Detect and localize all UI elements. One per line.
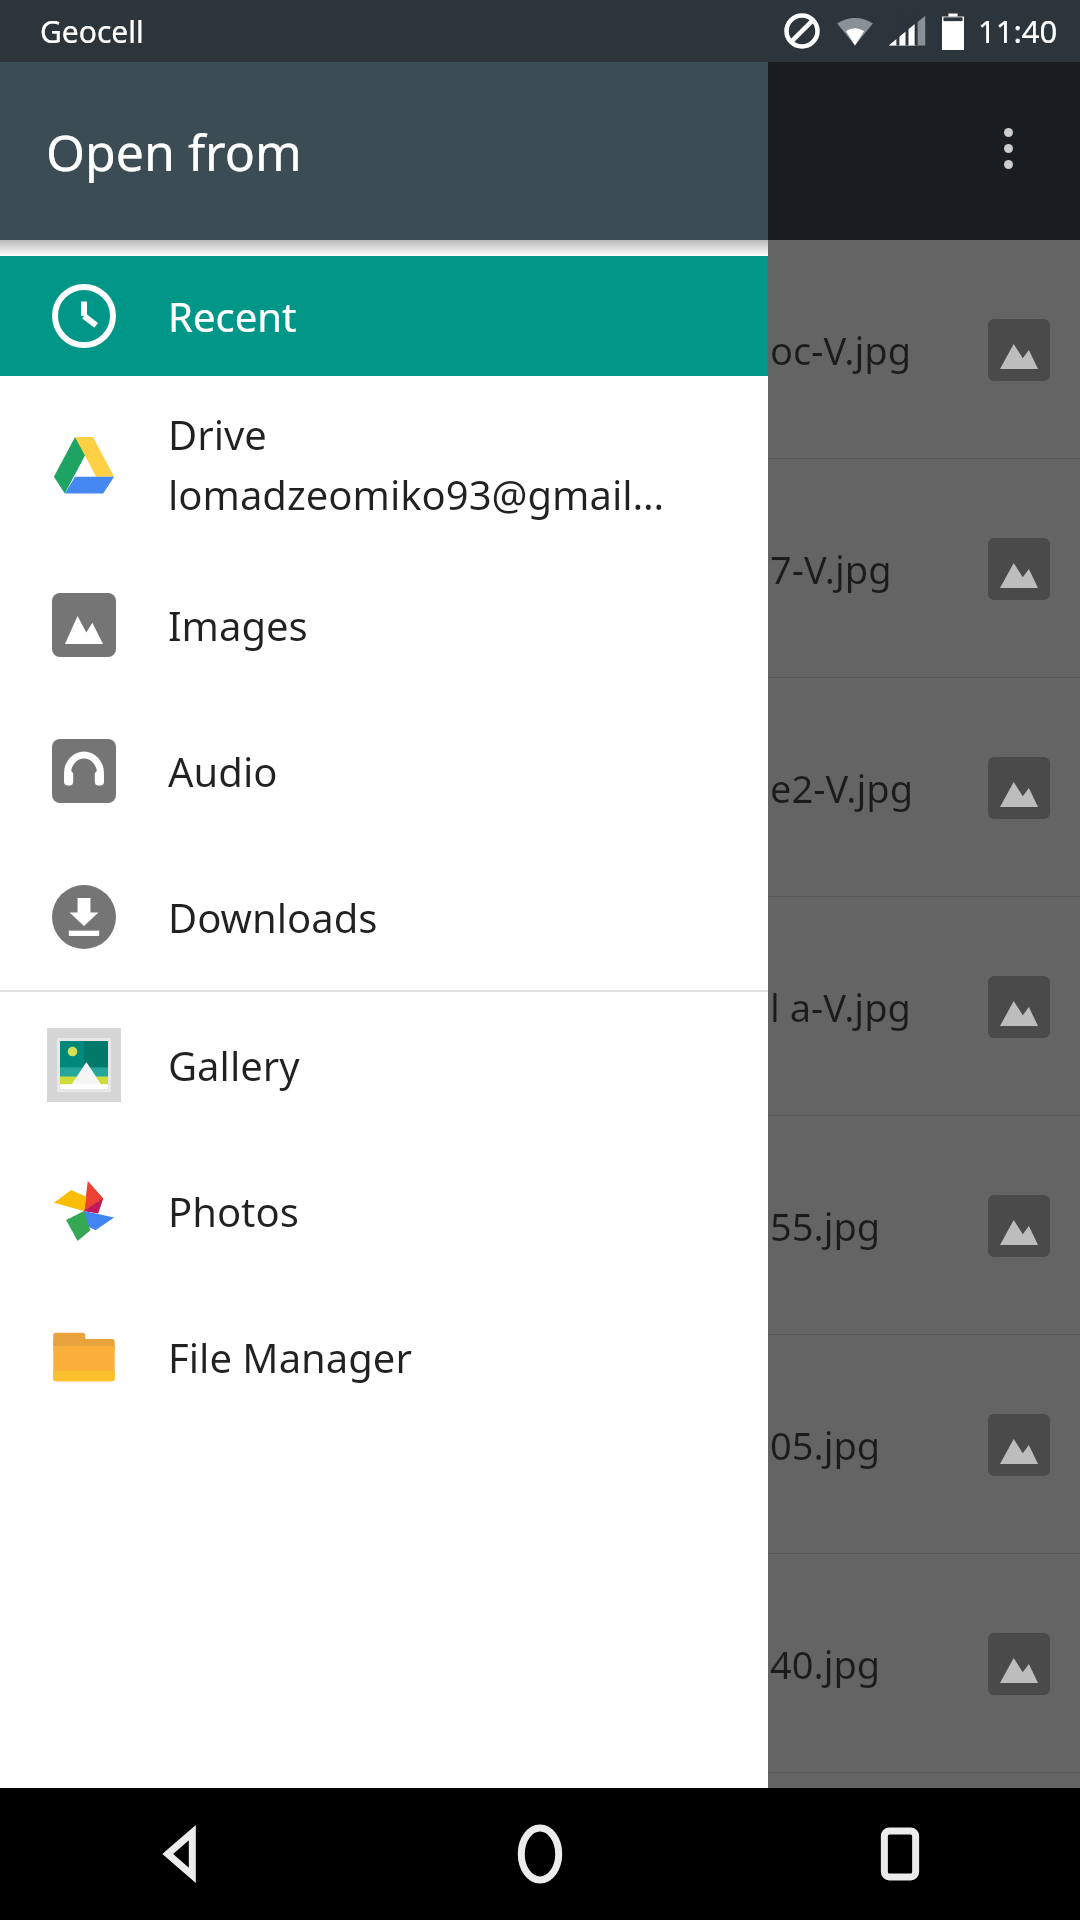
staticText: File Manager	[168, 1330, 412, 1384]
staticText: 05.jpg	[770, 1419, 881, 1471]
staticText: Recent	[168, 289, 297, 343]
staticText: Audio	[168, 744, 278, 798]
button[interactable]: Recent apps	[720, 1788, 1080, 1920]
staticText: Downloads	[168, 890, 378, 944]
staticText: e2-V.jpg	[770, 762, 914, 814]
staticText: Open from	[46, 118, 302, 186]
button[interactable]: Photos	[0, 1138, 768, 1284]
button[interactable]: 05.jpg	[0, 1335, 1080, 1554]
button[interactable]: 40.jpg	[0, 1554, 1080, 1773]
button[interactable]: e2-V.jpg	[0, 678, 1080, 897]
button[interactable]: Drive	[0, 376, 768, 552]
button[interactable]: Downloads	[0, 844, 768, 990]
button[interactable]: l a-V.jpg	[0, 897, 1080, 1116]
staticText: 55.jpg	[770, 1200, 881, 1252]
button[interactable]: Back	[0, 1788, 360, 1920]
staticText: 11:40	[978, 10, 1058, 52]
button[interactable]: Audio	[0, 698, 768, 844]
button[interactable]: File Manager	[0, 1284, 768, 1430]
staticText: 40.jpg	[770, 1638, 881, 1690]
staticText: Photos	[168, 1184, 299, 1238]
button[interactable]: More options	[978, 118, 1038, 178]
staticText: lomadzeomiko93@gmail…	[168, 467, 665, 521]
staticText: Gallery	[168, 1038, 300, 1092]
staticText: Images	[168, 598, 308, 652]
button[interactable]: Gallery	[0, 992, 768, 1138]
button[interactable]: Recent	[0, 256, 768, 376]
button[interactable]: oc-V.jpg	[0, 240, 1080, 459]
staticText: Drive	[168, 407, 267, 461]
button[interactable]: Home	[360, 1788, 720, 1920]
button[interactable]: 7-V.jpg	[0, 459, 1080, 678]
staticText: Geocell	[40, 11, 144, 52]
button[interactable]: 55.jpg	[0, 1116, 1080, 1335]
staticText: 7-V.jpg	[770, 543, 892, 595]
staticText: oc-V.jpg	[770, 324, 912, 376]
button[interactable]: Images	[0, 552, 768, 698]
staticText: l a-V.jpg	[770, 981, 911, 1033]
